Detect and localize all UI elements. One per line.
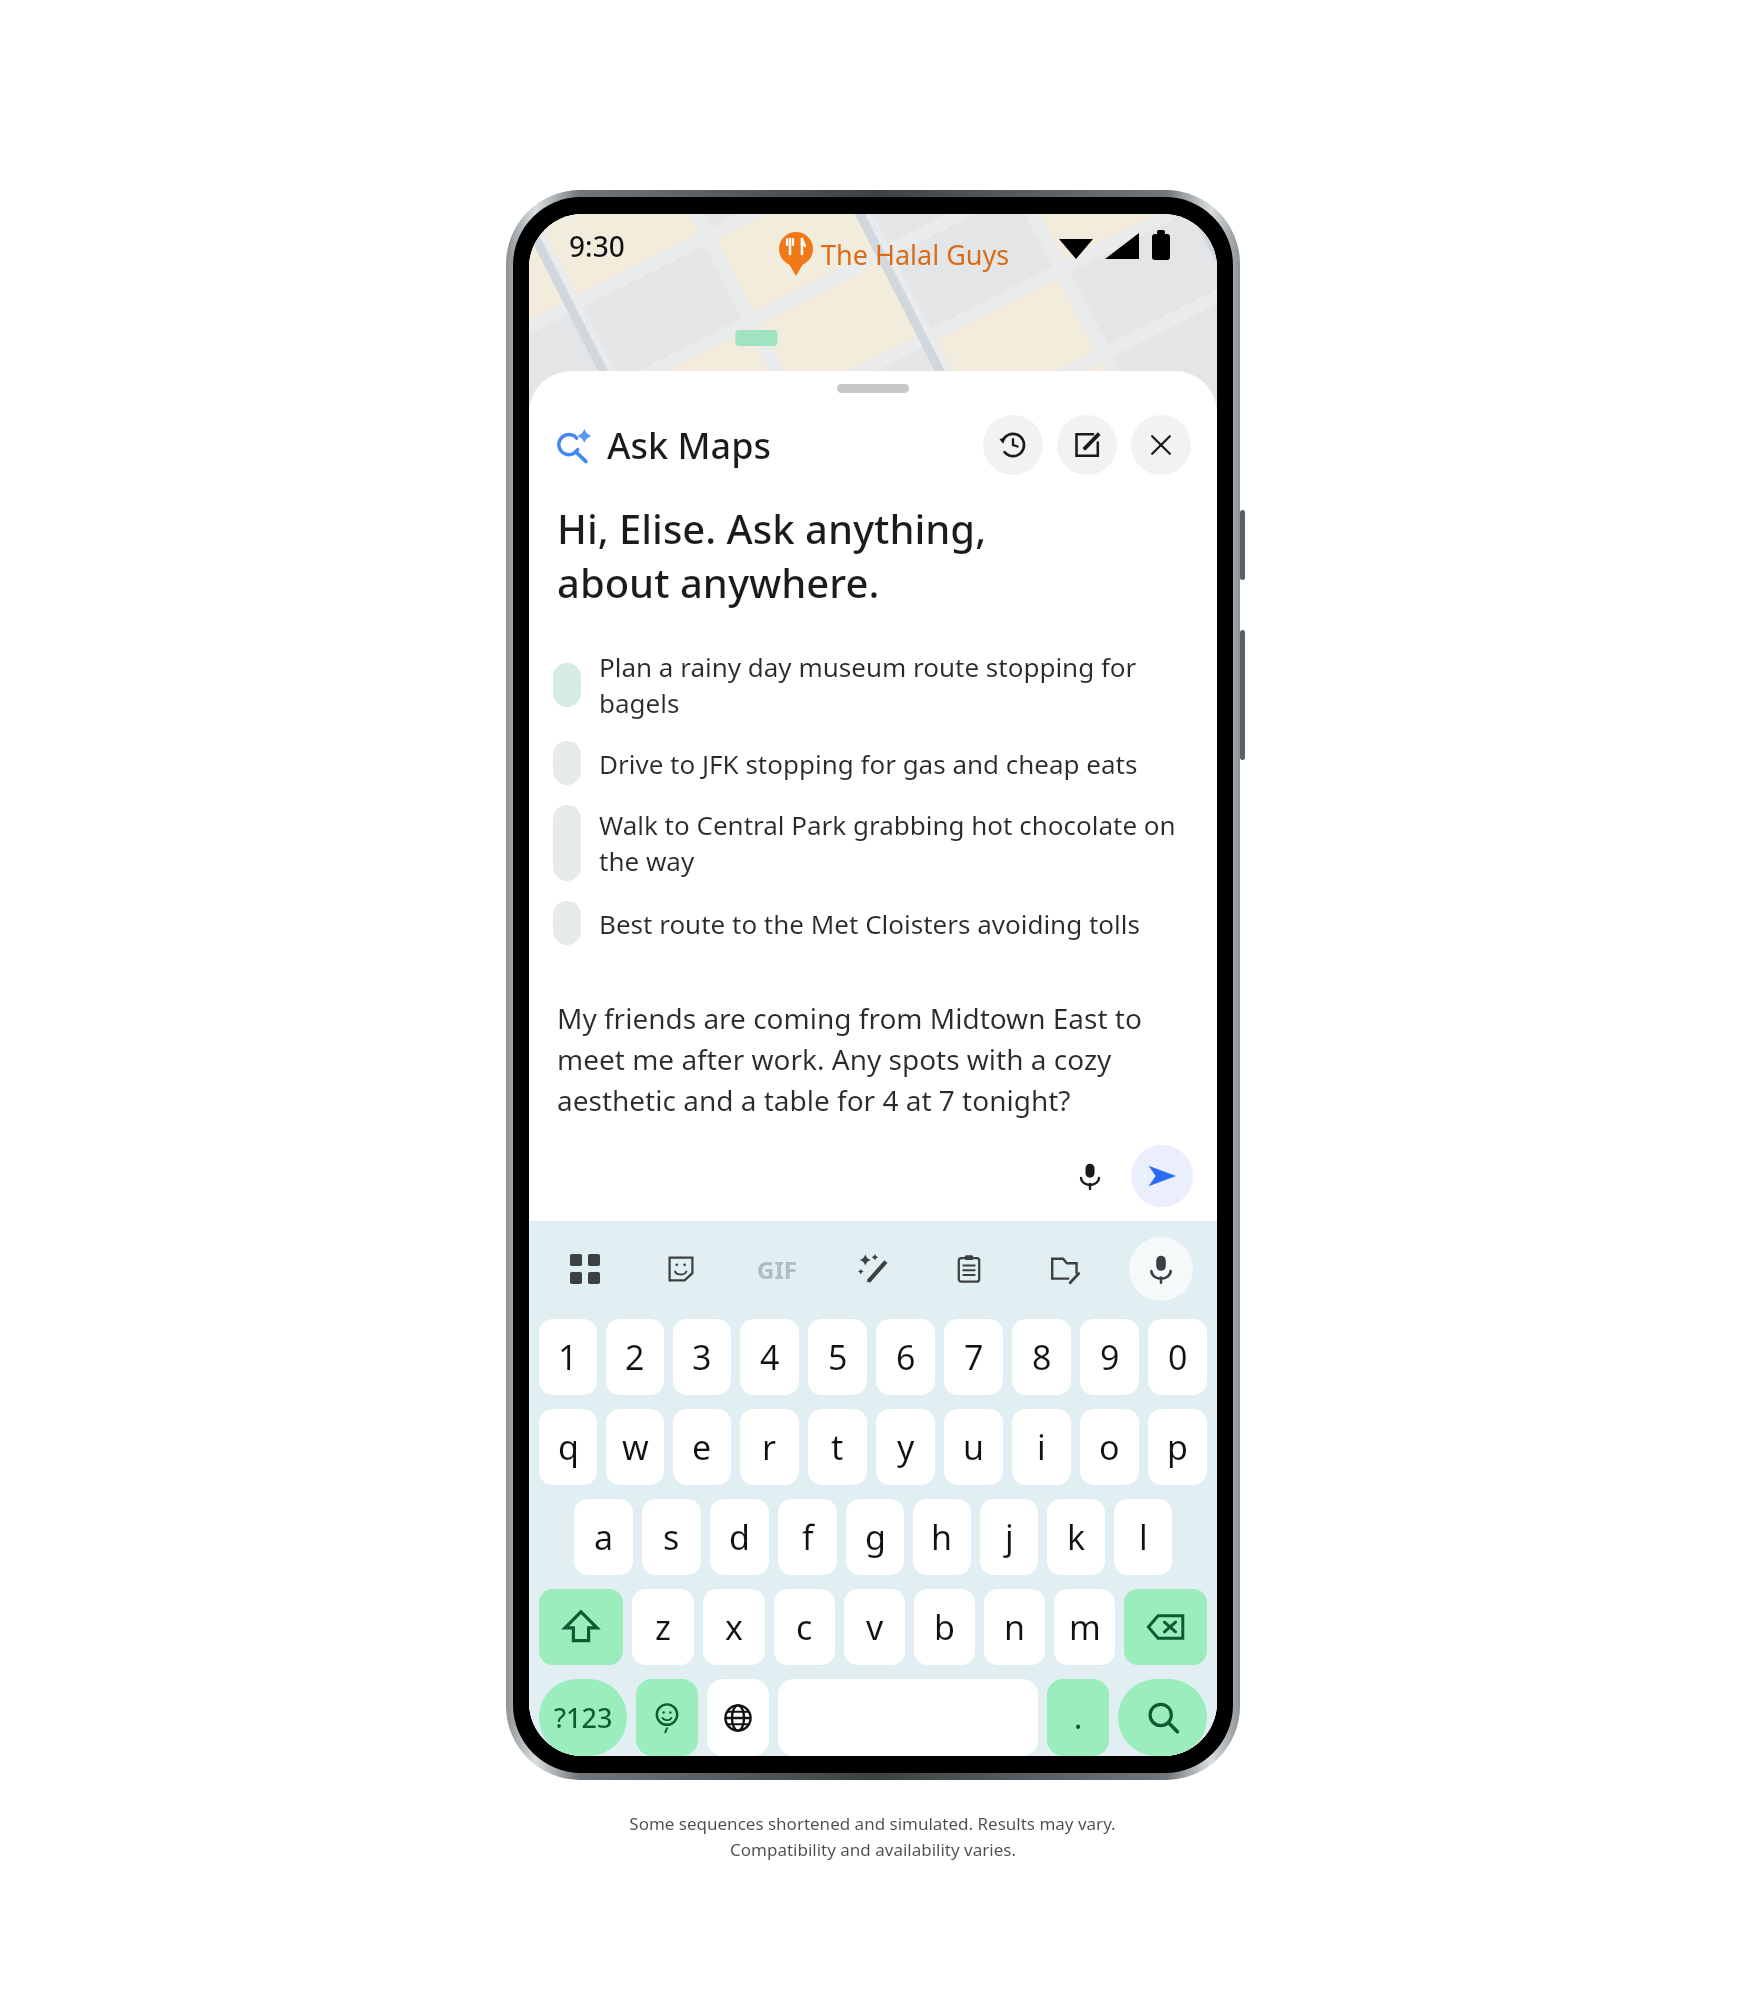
button[interactable]: h bbox=[913, 1499, 971, 1575]
button[interactable]: y bbox=[876, 1409, 935, 1485]
button[interactable]: New chat bbox=[1057, 415, 1117, 475]
staticText: x bbox=[725, 1604, 743, 1650]
button[interactable]: a bbox=[574, 1499, 633, 1575]
button[interactable]: Backspace bbox=[1124, 1589, 1207, 1665]
staticText: e bbox=[692, 1424, 712, 1470]
button[interactable]: Drive to JFK stopping for gas and cheap … bbox=[553, 731, 1193, 795]
staticText: o bbox=[1099, 1424, 1120, 1470]
staticText: j bbox=[1005, 1514, 1014, 1560]
button[interactable]: 5 bbox=[808, 1319, 867, 1395]
button[interactable]: 4 bbox=[740, 1319, 799, 1395]
staticText: My friends are coming from Midtown East … bbox=[557, 999, 1193, 1119]
staticText: w bbox=[622, 1424, 649, 1470]
button[interactable]: 2 bbox=[606, 1319, 664, 1395]
button[interactable]: Edit with AI bbox=[841, 1237, 905, 1301]
staticText: l bbox=[1139, 1514, 1148, 1560]
staticText: q bbox=[558, 1424, 579, 1470]
button[interactable]: 8 bbox=[1012, 1319, 1071, 1395]
button[interactable]: Change language bbox=[707, 1679, 769, 1756]
button[interactable]: 1 bbox=[539, 1319, 597, 1395]
button[interactable]: ?123 bbox=[539, 1679, 627, 1756]
button[interactable]: Apps bbox=[553, 1237, 617, 1301]
button[interactable]: Send bbox=[1131, 1145, 1193, 1207]
button[interactable]: q bbox=[539, 1409, 597, 1485]
button[interactable]: f bbox=[778, 1499, 837, 1575]
button[interactable]: p bbox=[1148, 1409, 1207, 1485]
staticText: 9 bbox=[1100, 1334, 1120, 1380]
staticText: GIF bbox=[757, 1253, 797, 1286]
button[interactable]: d bbox=[710, 1499, 769, 1575]
button[interactable]: History bbox=[983, 415, 1043, 475]
button[interactable]: Emoji bbox=[636, 1679, 698, 1756]
button[interactable]: c bbox=[774, 1589, 835, 1665]
staticText: 3 bbox=[692, 1334, 712, 1380]
staticText: 4 bbox=[760, 1334, 780, 1380]
staticText: 7 bbox=[964, 1334, 984, 1380]
button[interactable]: Plan a rainy day museum route stopping f… bbox=[553, 639, 1193, 731]
staticText: 5 bbox=[828, 1334, 848, 1380]
staticText: p bbox=[1167, 1424, 1188, 1470]
staticText: ?123 bbox=[554, 1699, 613, 1736]
button[interactable]: w bbox=[606, 1409, 664, 1485]
button[interactable]: n bbox=[984, 1589, 1045, 1665]
staticText: i bbox=[1037, 1424, 1046, 1470]
button[interactable]: e bbox=[673, 1409, 731, 1485]
button[interactable]: 9 bbox=[1080, 1319, 1139, 1395]
button[interactable]: Files bbox=[1033, 1237, 1097, 1301]
staticText: 2 bbox=[625, 1334, 645, 1380]
staticText: z bbox=[655, 1604, 671, 1650]
staticText: c bbox=[796, 1604, 813, 1650]
button[interactable]: 6 bbox=[876, 1319, 935, 1395]
button[interactable]: x bbox=[703, 1589, 765, 1665]
button[interactable]: Shift bbox=[539, 1589, 623, 1665]
staticText: u bbox=[963, 1424, 985, 1470]
button[interactable]: k bbox=[1047, 1499, 1105, 1575]
button[interactable]: Stickers bbox=[649, 1237, 713, 1301]
button[interactable]: Voice input bbox=[1059, 1145, 1121, 1207]
button[interactable]: g bbox=[846, 1499, 904, 1575]
button[interactable]: 3 bbox=[673, 1319, 731, 1395]
staticText: Best route to the Met Cloisters avoiding… bbox=[599, 906, 1193, 941]
staticText: m bbox=[1069, 1604, 1101, 1650]
button[interactable]: l bbox=[1114, 1499, 1172, 1575]
button[interactable]: Clipboard bbox=[937, 1237, 1001, 1301]
button[interactable]: r bbox=[740, 1409, 799, 1485]
button[interactable]: Ask Maps bbox=[557, 421, 772, 470]
staticText: about anywhere. bbox=[557, 555, 880, 609]
button[interactable]: Walk to Central Park grabbing hot chocol… bbox=[553, 795, 1193, 891]
staticText: f bbox=[802, 1514, 814, 1560]
button[interactable]: b bbox=[914, 1589, 975, 1665]
button[interactable]: j bbox=[980, 1499, 1038, 1575]
button[interactable]: GIF bbox=[745, 1237, 809, 1301]
staticText: d bbox=[729, 1514, 750, 1560]
button[interactable]: t bbox=[808, 1409, 867, 1485]
staticText: Ask Maps bbox=[607, 421, 772, 470]
staticText: n bbox=[1004, 1604, 1026, 1650]
button[interactable]: 7 bbox=[944, 1319, 1003, 1395]
staticText: t bbox=[831, 1424, 844, 1470]
staticText: a bbox=[594, 1514, 614, 1560]
button[interactable]: z bbox=[632, 1589, 694, 1665]
button[interactable]: s bbox=[642, 1499, 701, 1575]
button[interactable]: o bbox=[1080, 1409, 1139, 1485]
staticText: 9:30 bbox=[569, 227, 625, 265]
button[interactable]: Close bbox=[1131, 415, 1191, 475]
staticText: 6 bbox=[896, 1334, 916, 1380]
staticText: s bbox=[663, 1514, 680, 1560]
button[interactable]: u bbox=[944, 1409, 1003, 1485]
button[interactable]: v bbox=[844, 1589, 905, 1665]
staticText: Hi, Elise. Ask anything, bbox=[557, 501, 987, 555]
staticText: 1 bbox=[558, 1334, 578, 1380]
button[interactable]: 0 bbox=[1148, 1319, 1207, 1395]
staticText: The Halal Guys bbox=[821, 236, 1010, 273]
button[interactable]: . bbox=[1047, 1679, 1109, 1756]
button[interactable]: Best route to the Met Cloisters avoiding… bbox=[553, 891, 1193, 955]
button[interactable]: Voice typing bbox=[1129, 1237, 1193, 1301]
button[interactable]: i bbox=[1012, 1409, 1071, 1485]
staticText: b bbox=[934, 1604, 955, 1650]
button[interactable]: Search bbox=[1118, 1679, 1207, 1756]
button[interactable]: m bbox=[1054, 1589, 1115, 1665]
staticText: Plan a rainy day museum route stopping f… bbox=[599, 649, 1193, 721]
staticText: Compatibility and availability varies. bbox=[730, 1838, 1016, 1861]
